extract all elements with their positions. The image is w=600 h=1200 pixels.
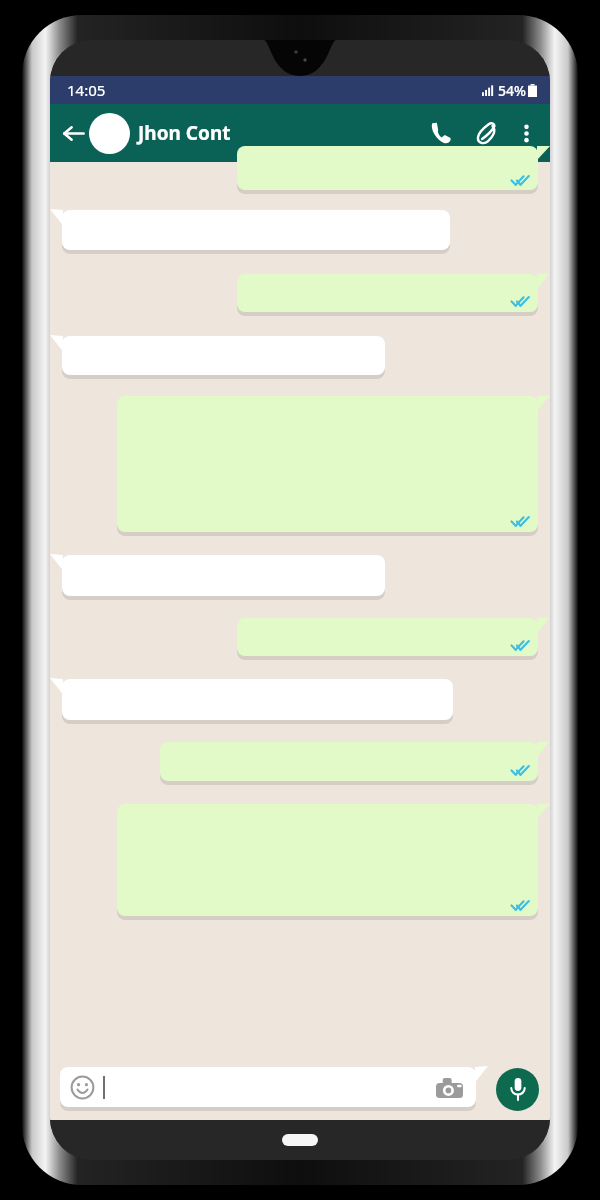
- button[interactable]: [50, 336, 385, 379]
- button[interactable]: Emoji: [60, 1067, 488, 1111]
- button[interactable]: Record voice message: [496, 1068, 539, 1111]
- button[interactable]: Camera: [436, 1077, 463, 1099]
- button[interactable]: Emoji: [70, 1075, 95, 1100]
- button[interactable]: Contact photo: [89, 113, 130, 154]
- button[interactable]: [50, 210, 450, 254]
- button[interactable]: [117, 396, 550, 536]
- button[interactable]: Attach: [466, 113, 506, 153]
- button[interactable]: Jhon Cont: [138, 120, 421, 146]
- button[interactable]: More options: [509, 116, 543, 150]
- button[interactable]: [117, 804, 550, 920]
- button[interactable]: [237, 274, 550, 316]
- button[interactable]: [237, 162, 550, 194]
- button[interactable]: [237, 618, 550, 660]
- button[interactable]: [160, 742, 550, 785]
- button[interactable]: Back: [58, 118, 88, 148]
- button[interactable]: Voice call: [421, 113, 461, 153]
- staticText: 54%: [498, 81, 526, 100]
- button[interactable]: [50, 679, 453, 724]
- button[interactable]: [50, 555, 385, 600]
- staticText: 14:05: [67, 80, 106, 100]
